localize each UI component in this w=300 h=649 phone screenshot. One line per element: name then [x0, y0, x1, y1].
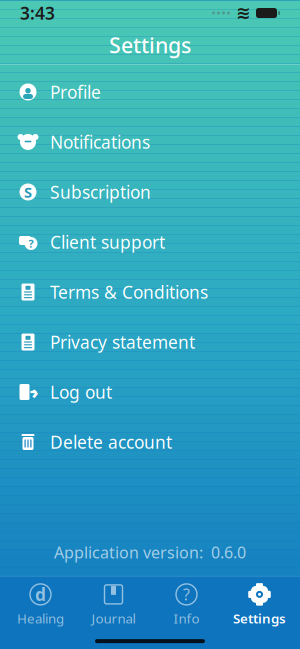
button[interactable]: Terms & Conditions: [0, 267, 300, 317]
staticText: d: [35, 583, 46, 606]
staticText: S: [24, 182, 32, 202]
button[interactable]: ›: [0, 367, 300, 417]
staticText: Application version: 0.6.0: [54, 542, 246, 563]
staticText: Delete account: [50, 430, 172, 453]
staticText: ≋: [236, 3, 251, 23]
staticText: Healing: [17, 609, 64, 627]
staticText: Profile: [50, 80, 101, 103]
button[interactable]: S: [0, 167, 300, 217]
button[interactable]: Journal: [77, 576, 150, 631]
staticText: Settings: [233, 609, 286, 627]
staticText: Privacy statement: [50, 330, 195, 353]
button[interactable]: Notifications: [0, 117, 300, 167]
staticText: ?: [28, 236, 33, 251]
button[interactable]: d: [4, 576, 77, 631]
staticText: Journal: [91, 609, 135, 627]
staticText: ?: [183, 584, 190, 605]
staticText: Notifications: [50, 130, 150, 153]
staticText: Client support: [50, 230, 165, 253]
button[interactable]: ?: [0, 217, 300, 267]
button[interactable]: Settings: [223, 576, 296, 631]
staticText: Info: [173, 609, 199, 627]
button[interactable]: ?: [150, 576, 223, 631]
staticText: 3:43: [20, 1, 55, 24]
button[interactable]: Privacy statement: [0, 317, 300, 367]
staticText: Terms & Conditions: [50, 280, 208, 303]
staticText: ›: [31, 380, 38, 403]
staticText: Subscription: [50, 180, 151, 203]
staticText: Settings: [109, 31, 191, 59]
button[interactable]: Profile: [0, 67, 300, 117]
staticText: Log out: [50, 380, 112, 403]
button[interactable]: Delete account: [0, 417, 300, 467]
